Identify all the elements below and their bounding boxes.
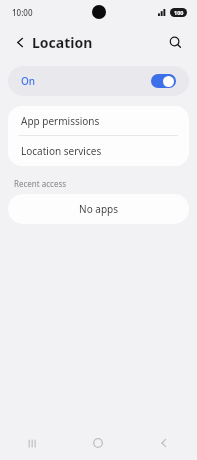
- staticText: Recent access: [14, 178, 67, 189]
- button[interactable]: App permissions: [8, 106, 189, 135]
- staticText: On: [21, 74, 36, 88]
- button[interactable]: Back: [6, 28, 34, 56]
- button[interactable]: Home: [65, 426, 131, 460]
- button[interactable]: No apps: [8, 194, 189, 224]
- staticText: App permissions: [21, 114, 100, 128]
- staticText: Location services: [21, 144, 102, 158]
- staticText: 10:00: [12, 7, 33, 18]
- button[interactable]: Recents: [0, 426, 65, 460]
- button[interactable]: Search: [161, 28, 189, 56]
- button[interactable]: On: [8, 66, 189, 96]
- button[interactable]: Location services: [8, 136, 189, 166]
- staticText: 100: [174, 9, 184, 16]
- staticText: No apps: [79, 202, 118, 216]
- staticText: Location: [32, 33, 93, 52]
- button[interactable]: Back: [131, 426, 197, 460]
